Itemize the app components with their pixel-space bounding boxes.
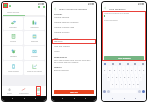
- staticText: j: [132, 76, 133, 79]
- button[interactable]: Receipts: [3, 46, 23, 60]
- staticText: t: [123, 69, 124, 72]
- staticText: l: [140, 76, 141, 79]
- staticText: k: [136, 76, 138, 79]
- staticText: Manage Change Code: [54, 26, 75, 29]
- staticText: SIGNOUT: [54, 66, 62, 68]
- staticText: y: [127, 69, 129, 72]
- staticText: s: [112, 76, 113, 79]
- staticText: m: [137, 83, 139, 86]
- staticText: u: [131, 69, 133, 72]
- staticText: Sign out: [70, 91, 78, 94]
- staticText: Backup Settings: [54, 69, 69, 72]
- button[interactable]: Backup Settings: [52, 68, 96, 73]
- staticText: Manage Favorite Locations: [54, 21, 79, 24]
- staticText: r: [119, 69, 120, 72]
- staticText: Give Feedback: [109, 7, 126, 10]
- staticText: Home: [7, 92, 12, 94]
- staticText: Menu: [36, 92, 41, 94]
- staticText: Main Account & Settings: [59, 7, 87, 10]
- staticText: q: [104, 69, 106, 72]
- staticText: a: [108, 76, 110, 79]
- staticText: e: [114, 69, 116, 72]
- staticText: Sales receipts: [8, 70, 19, 72]
- staticText: MORE FROM US: [54, 56, 68, 58]
- button[interactable]: Sign out: [54, 90, 94, 94]
- button[interactable]: Sales receipts: [3, 61, 23, 75]
- staticText: Manage Settings: [54, 16, 70, 19]
- staticText: Receipts: [10, 55, 17, 57]
- button[interactable]: Manage Settings: [52, 15, 96, 20]
- button[interactable]: Manage Invoices: [52, 30, 96, 35]
- staticText: x: [116, 83, 118, 86]
- staticText: o: [139, 69, 141, 72]
- staticText: i: [135, 69, 136, 72]
- staticText: z: [112, 83, 113, 86]
- button[interactable]: Back: [103, 6, 107, 10]
- button[interactable]: Transfers: [3, 17, 23, 30]
- button[interactable]: Profit & loss report: [24, 61, 45, 75]
- button[interactable]: Manage Favorite Locations: [52, 20, 96, 25]
- staticText: c: [121, 83, 122, 86]
- staticText: n: [133, 83, 135, 86]
- staticText: v: [125, 83, 127, 86]
- button[interactable]: Statement: [24, 17, 45, 30]
- staticText: Transactions: [19, 92, 29, 94]
- button[interactable]: Get a free business bank account today w…: [52, 58, 96, 64]
- staticText: 0/500 characters: [104, 19, 118, 21]
- staticText: HELP: [54, 37, 59, 39]
- staticText: Statement: [30, 26, 39, 28]
- staticText: Manage Invoices: [54, 31, 70, 34]
- staticText: Feedback: [54, 40, 63, 43]
- staticText: Help and Support: [54, 45, 71, 48]
- staticText: Profit & loss report: [27, 70, 42, 72]
- staticText: Transfers: [9, 26, 17, 28]
- staticText: Scanner: [31, 55, 38, 57]
- button[interactable]: Manage Change Code: [52, 25, 96, 30]
- staticText: Select account: [7, 11, 20, 13]
- button[interactable]: Scanner: [24, 46, 45, 60]
- staticText: ACCOUNT: [54, 13, 63, 15]
- staticText: Send Feedback: [118, 57, 131, 59]
- staticText: Get a free business bank account today w…: [54, 59, 91, 61]
- staticText: b: [129, 83, 131, 86]
- button[interactable]: Back: [53, 7, 56, 10]
- button[interactable]: Help and Support: [52, 44, 96, 49]
- button[interactable]: Menu: [36, 86, 41, 96]
- staticText: p: [143, 69, 145, 72]
- button[interactable]: About: [52, 49, 96, 54]
- button[interactable]: Send Feedback: [104, 56, 144, 60]
- button[interactable]: Transactions: [16, 86, 31, 96]
- button[interactable]: Invoice: [3, 31, 23, 45]
- staticText: d: [116, 76, 118, 79]
- staticText: Invoice: [10, 40, 16, 42]
- staticText: g: [124, 76, 126, 79]
- staticText: w: [109, 69, 111, 72]
- staticText: our partner and earn rewards: [54, 61, 79, 63]
- staticText: What do you want us to know?: [104, 12, 130, 14]
- staticText: h: [128, 76, 130, 79]
- staticText: About: [54, 50, 60, 53]
- button[interactable]: Feedback: [52, 39, 96, 44]
- button[interactable]: Estimate: [24, 31, 45, 45]
- button[interactable]: Account logo: [4, 4, 7, 7]
- staticText: f: [120, 76, 121, 79]
- staticText: Estimate: [31, 40, 38, 42]
- button[interactable]: Home: [2, 86, 16, 96]
